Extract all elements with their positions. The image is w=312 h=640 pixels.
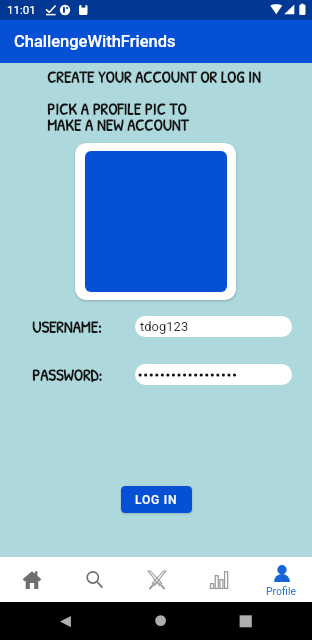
- button[interactable]: Battles: [126, 557, 188, 602]
- staticText: PICK A PROFILE PIC TO MAKE A NEW ACCOUNT: [47, 98, 189, 136]
- staticText: CREATE YOUR ACCOUNT OR LOG IN: [47, 66, 261, 88]
- staticText: Profile: [266, 585, 297, 597]
- button[interactable]: tdog123: [135, 316, 292, 337]
- staticText: 11:01: [7, 3, 36, 16]
- button[interactable]: Search: [63, 557, 126, 602]
- button[interactable]: Pick a profile picture: [75, 143, 236, 300]
- staticText: LOG IN: [135, 493, 178, 507]
- button[interactable]: [135, 364, 292, 385]
- button[interactable]: Stats: [188, 557, 250, 602]
- button[interactable]: Profile: [250, 557, 312, 602]
- staticText: ChallengeWithFriends: [14, 32, 176, 51]
- staticText: tdog123: [140, 319, 189, 334]
- staticText: USERNAME:: [32, 316, 102, 337]
- button[interactable]: LOG IN: [121, 486, 192, 513]
- staticText: PASSWORD:: [32, 364, 103, 385]
- button[interactable]: Home: [0, 557, 63, 602]
